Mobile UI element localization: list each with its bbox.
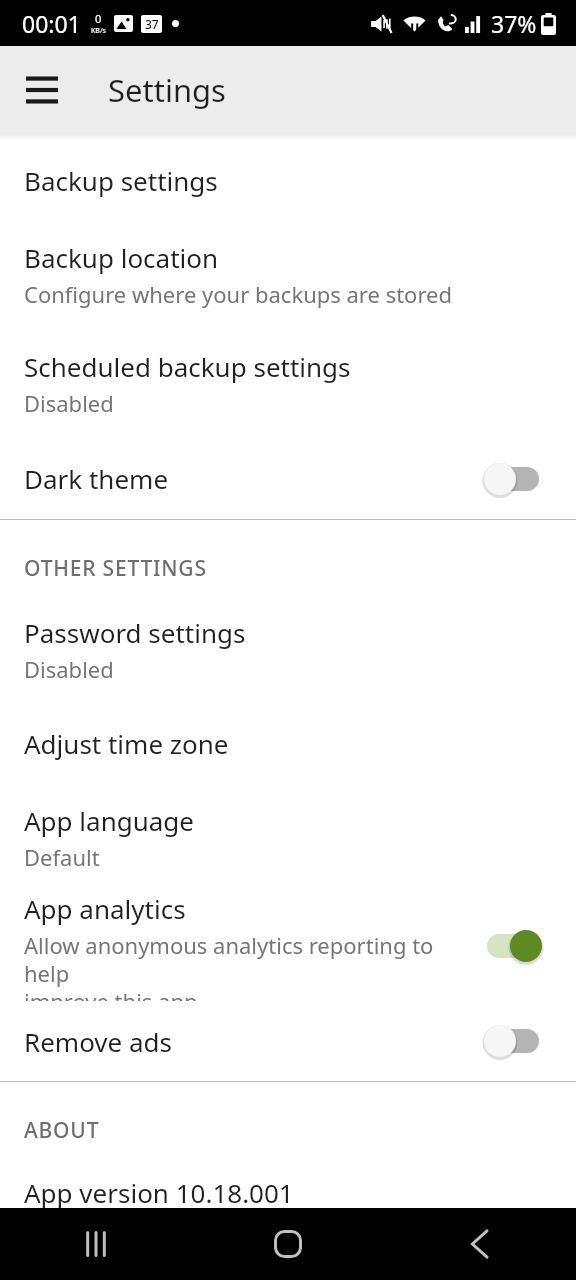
button[interactable]: Dark theme <box>0 438 576 519</box>
button[interactable]: Back <box>384 1208 576 1280</box>
button[interactable]: Backup location <box>0 220 576 329</box>
staticText: App analytics <box>24 891 186 926</box>
staticText: 37 <box>145 16 159 32</box>
button[interactable]: Toggle on <box>480 924 546 968</box>
staticText: Allow anonymous analytics reporting to h… <box>24 930 464 1001</box>
button[interactable]: Recent apps <box>0 1208 192 1280</box>
staticText: Settings <box>108 69 226 111</box>
staticText: Backup location <box>24 240 219 275</box>
button[interactable]: Toggle off <box>480 1019 546 1063</box>
staticText: Disabled <box>24 654 114 684</box>
staticText: KB/s <box>91 26 106 36</box>
staticText: Remove ads <box>24 1024 173 1059</box>
staticText: Scheduled backup settings <box>24 349 351 384</box>
staticText: Password settings <box>24 615 246 650</box>
staticText: 0 <box>95 11 102 26</box>
staticText: App language <box>24 803 195 838</box>
button[interactable]: Adjust time zone <box>0 703 576 783</box>
staticText: OTHER SETTINGS <box>24 554 207 583</box>
staticText: Dark theme <box>24 461 169 496</box>
staticText: Adjust time zone <box>24 726 229 761</box>
staticText: Disabled <box>24 388 114 418</box>
button[interactable]: App language <box>0 783 576 891</box>
button[interactable]: Home <box>192 1208 384 1280</box>
button[interactable]: Open navigation menu <box>10 58 74 122</box>
button[interactable]: Toggle off <box>480 457 546 501</box>
staticText: Configure where your backups are stored <box>24 279 453 309</box>
button[interactable]: Scheduled backup settings <box>0 329 576 438</box>
button[interactable]: Remove ads <box>0 1001 576 1081</box>
staticText: 37% <box>491 8 537 39</box>
staticText: 00:01 <box>22 8 81 39</box>
staticText: ABOUT <box>24 1116 100 1145</box>
staticText: Backup settings <box>24 163 218 198</box>
button[interactable]: Backup settings <box>0 140 576 220</box>
staticText: App version 10.18.001 <box>24 1175 294 1210</box>
staticText: Default <box>24 842 100 872</box>
button[interactable]: Password settings <box>0 595 576 703</box>
button[interactable]: App version 10.18.001 <box>0 1157 576 1227</box>
button[interactable]: App analytics <box>0 891 576 1001</box>
